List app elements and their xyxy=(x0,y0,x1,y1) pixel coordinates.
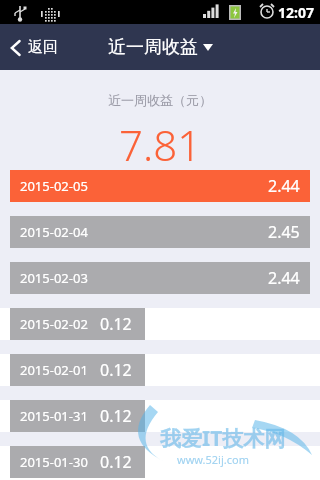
button[interactable]: 近一周收益 xyxy=(102,30,219,65)
button[interactable]: 2015-02-01 xyxy=(0,354,320,386)
staticText: 12:07 xyxy=(278,3,314,22)
staticText: 2.44 xyxy=(268,267,300,289)
staticText: 2015-02-05 xyxy=(20,177,88,195)
staticText: 返回 xyxy=(28,38,58,57)
button[interactable]: 2015-02-05 xyxy=(0,170,320,202)
staticText: 近一周收益（元） xyxy=(108,92,212,108)
staticText: 2015-02-02 xyxy=(20,315,88,333)
staticText: 2015-02-01 xyxy=(20,361,88,379)
staticText: www.52ij.com xyxy=(177,452,249,467)
button[interactable]: 返回 xyxy=(0,30,70,65)
button[interactable]: 2015-01-31 xyxy=(0,400,320,432)
staticText: 2015-01-30 xyxy=(20,453,88,471)
staticText: 我爱IT技术网 xyxy=(160,424,286,453)
staticText: 0.12 xyxy=(100,359,132,381)
staticText: 0.12 xyxy=(100,313,132,335)
button[interactable]: 2015-02-02 xyxy=(0,308,320,340)
staticText: 2015-01-31 xyxy=(20,407,88,425)
button[interactable]: 2015-01-30 xyxy=(0,446,320,478)
button[interactable]: 2015-02-04 xyxy=(0,216,320,248)
button[interactable]: 2015-02-03 xyxy=(0,262,320,294)
staticText: 0.12 xyxy=(100,405,132,427)
staticText: 2015-02-03 xyxy=(20,269,88,287)
staticText: 2.44 xyxy=(268,175,300,197)
staticText: 近一周收益 xyxy=(108,36,198,59)
staticText: 7.81 xyxy=(119,116,202,170)
staticText: 2015-02-04 xyxy=(20,223,88,241)
staticText: 0.12 xyxy=(100,451,132,473)
staticText: 2.45 xyxy=(268,221,300,243)
